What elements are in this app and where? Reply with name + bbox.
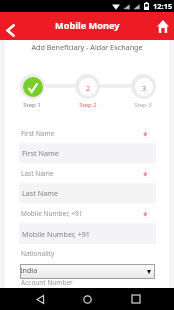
button[interactable]: India xyxy=(20,264,155,279)
button[interactable]: Step 3 xyxy=(131,74,156,99)
button[interactable]: Back xyxy=(30,288,50,310)
button[interactable]: Back xyxy=(0,12,22,40)
staticText: Mobile Money xyxy=(55,19,120,32)
staticText: Last Name xyxy=(21,169,54,178)
button[interactable]: Recents xyxy=(126,289,146,309)
button[interactable]: Mobile Number, +91 xyxy=(19,223,156,244)
staticText: Mobile Number, +91 xyxy=(22,229,90,239)
button[interactable]: Last Name xyxy=(19,183,156,203)
staticText: Account Number xyxy=(21,278,73,287)
button[interactable]: Step 2 xyxy=(75,74,100,99)
staticText: Nationality xyxy=(21,249,55,258)
staticText: India xyxy=(20,265,38,275)
staticText: First Name xyxy=(21,129,55,138)
staticText: 2 xyxy=(86,83,91,93)
staticText: Step 1 xyxy=(23,101,41,109)
button[interactable]: Home xyxy=(150,12,174,40)
staticText: 3 xyxy=(142,83,147,93)
staticText: Mobile Number, +91 xyxy=(21,209,83,218)
staticText: 12:15 xyxy=(153,1,173,11)
staticText: Add Beneficiary - Aldar Exchange xyxy=(0,42,174,52)
staticText: Step 2 xyxy=(79,101,97,109)
button[interactable]: Home xyxy=(77,289,97,309)
button[interactable]: Step 1 xyxy=(20,74,45,99)
staticText: Last Name xyxy=(22,188,58,198)
button[interactable]: First Name xyxy=(19,143,156,163)
staticText: * xyxy=(143,130,148,142)
staticText: * xyxy=(143,170,148,182)
staticText: Step 3 xyxy=(134,101,152,109)
staticText: * xyxy=(143,210,148,222)
staticText: First Name xyxy=(22,148,59,158)
